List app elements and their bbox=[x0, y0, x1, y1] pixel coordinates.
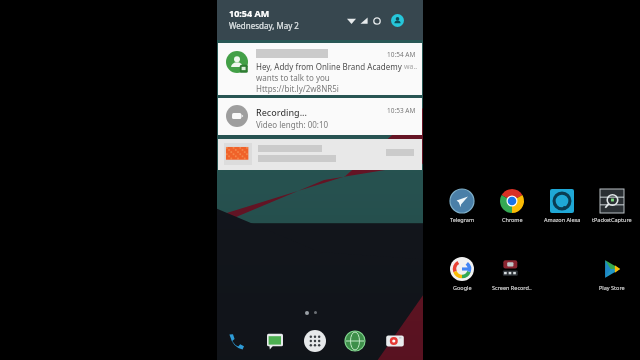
staticText: Hey, Addy from Online Brand Academy bbox=[256, 61, 402, 72]
button[interactable]: Telegram bbox=[437, 188, 487, 223]
staticText: Recording... bbox=[256, 106, 307, 118]
staticText: Wednesday, May 2 bbox=[229, 20, 299, 31]
button[interactable]: Phone bbox=[222, 328, 248, 354]
button[interactable]: User account bbox=[391, 14, 404, 27]
staticText: Amazon Alexa bbox=[544, 216, 581, 223]
button[interactable]: Chrome bbox=[487, 188, 537, 223]
button[interactable]: Messaging bbox=[262, 328, 288, 354]
staticText: wants to talk to you bbox=[256, 72, 330, 83]
button[interactable]: Apps bbox=[302, 328, 328, 354]
staticText: Telegram bbox=[450, 216, 475, 223]
staticText: Chrome bbox=[502, 216, 523, 223]
button[interactable]: Recording... bbox=[218, 98, 422, 135]
button[interactable]: Amazon Alexa bbox=[537, 188, 587, 223]
staticText: Video length: 00:10 bbox=[256, 119, 329, 130]
staticText: Play Store bbox=[599, 284, 625, 291]
staticText: tPacketCapture bbox=[592, 216, 632, 223]
button[interactable]: Google bbox=[437, 256, 487, 291]
staticText: 10:53 AM bbox=[387, 106, 416, 115]
button[interactable]: tPacketCapture bbox=[587, 188, 637, 223]
button[interactable]: Hey, Addy from Online Brand Academy bbox=[218, 43, 422, 95]
button[interactable] bbox=[218, 139, 422, 170]
staticText: 10:54 AM bbox=[387, 50, 416, 59]
staticText: Google bbox=[453, 284, 472, 291]
staticText: Https://bit.ly/2w8NR5i bbox=[256, 83, 339, 94]
button[interactable]: Camera bbox=[382, 328, 408, 354]
button[interactable]: Screen Recorder bbox=[487, 256, 537, 291]
staticText: wa.. bbox=[404, 62, 418, 72]
button[interactable]: Play Store bbox=[587, 256, 637, 291]
button[interactable]: Browser bbox=[342, 328, 368, 354]
staticText: Screen Record.. bbox=[492, 284, 532, 291]
staticText: 10:54 AM bbox=[229, 7, 270, 19]
